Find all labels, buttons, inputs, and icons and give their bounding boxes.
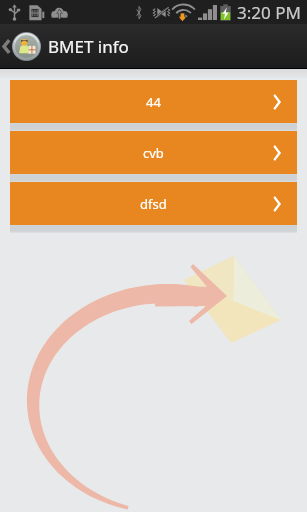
staticText: 3:20 PM [237,1,301,24]
button[interactable]: cvb [10,131,297,174]
button[interactable]: 44 [10,80,297,123]
staticText: dfsd [140,195,167,213]
staticText: 44 [146,93,161,111]
staticText: BMET info [48,35,129,58]
button[interactable]: Navigate up [0,31,42,62]
button[interactable]: dfsd [10,182,297,225]
staticText: cvb [143,144,164,162]
